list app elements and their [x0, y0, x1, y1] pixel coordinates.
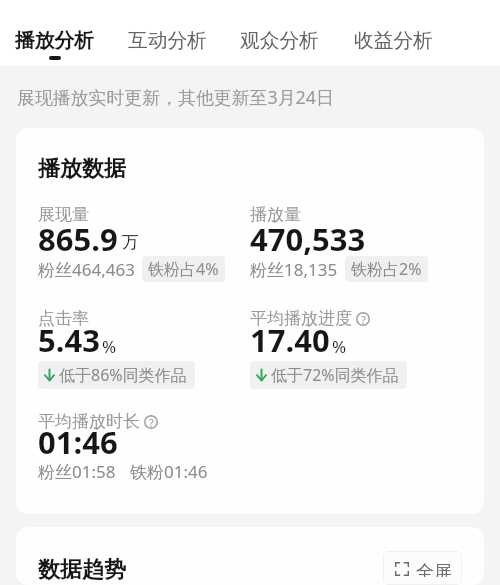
- staticText: 粉丝464,463: [38, 258, 135, 281]
- staticText: 收益分析: [354, 28, 433, 53]
- staticText: 低于72%同类作品: [271, 364, 399, 386]
- staticText: 5.43: [38, 319, 100, 361]
- staticText: 铁粉占2%: [351, 258, 422, 280]
- staticText: 铁粉01:46: [130, 460, 208, 483]
- button[interactable]: 观众分析: [207, 0, 319, 56]
- button[interactable]: 收益分析: [319, 0, 433, 56]
- button[interactable]: Fullscreen: [383, 551, 462, 585]
- staticText: 平均播放进度: [250, 308, 352, 329]
- button[interactable]: 播放分析: [0, 0, 94, 60]
- staticText: %: [332, 335, 347, 358]
- staticText: 01:46: [38, 421, 118, 463]
- staticText: 点击率: [38, 308, 89, 329]
- other: More info: [144, 415, 158, 429]
- staticText: 865.9: [38, 218, 118, 260]
- other: More info: [356, 312, 370, 326]
- staticText: 粉丝18,135: [250, 258, 338, 281]
- button[interactable]: 互动分析: [94, 0, 207, 56]
- staticText: 展现量: [38, 204, 89, 225]
- other: Fullscreen: [395, 562, 409, 576]
- staticText: %: [102, 335, 117, 358]
- staticText: 平均播放时长: [38, 411, 140, 432]
- staticText: 播放分析: [15, 28, 94, 53]
- staticText: 万: [122, 232, 139, 253]
- staticText: 观众分析: [240, 28, 319, 53]
- staticText: 17.40: [250, 319, 330, 361]
- staticText: 低于86%同类作品: [59, 364, 187, 386]
- staticText: 播放量: [250, 204, 301, 225]
- staticText: 铁粉占4%: [148, 258, 219, 280]
- staticText: 互动分析: [128, 28, 207, 53]
- staticText: 播放数据: [38, 155, 126, 183]
- staticText: ?: [149, 415, 154, 429]
- staticText: 数据趋势: [38, 556, 126, 584]
- staticText: 粉丝01:58: [38, 460, 116, 483]
- staticText: ?: [361, 312, 366, 326]
- staticText: 470,533: [250, 218, 366, 260]
- staticText: 全屏: [416, 561, 452, 577]
- staticText: 展现播放实时更新，其他更新至3月24日: [17, 85, 334, 109]
